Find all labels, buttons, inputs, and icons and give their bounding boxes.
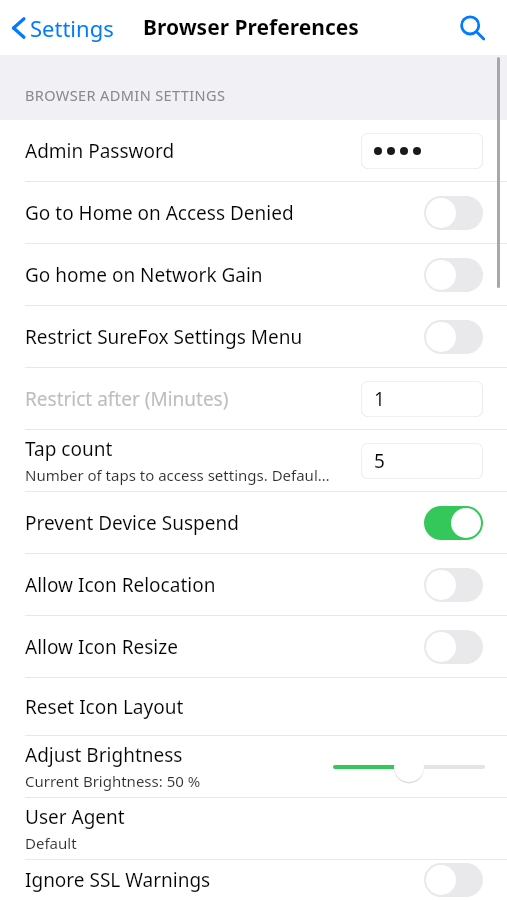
staticText: Number of taps to access settings. Defau… bbox=[25, 465, 330, 485]
button[interactable]: Admin Password bbox=[0, 120, 507, 181]
staticText: Restrict SureFox Settings Menu bbox=[25, 324, 303, 350]
staticText: Restrict after (Minutes) bbox=[25, 386, 229, 412]
button[interactable]: Adjust Brightness bbox=[0, 736, 507, 797]
staticText: Current Brightness: 50 % bbox=[25, 771, 201, 791]
staticText: Settings bbox=[30, 13, 114, 43]
button[interactable]: 5 bbox=[361, 443, 483, 479]
staticText: Go to Home on Access Denied bbox=[25, 200, 294, 226]
button[interactable]: Go home on Network Gain bbox=[0, 244, 507, 305]
button[interactable]: Reset Icon Layout bbox=[0, 678, 507, 735]
button[interactable]: Search bbox=[451, 7, 493, 49]
staticText: Go home on Network Gain bbox=[25, 262, 263, 288]
staticText: Ignore SSL Warnings bbox=[25, 867, 211, 893]
staticText: Tap count bbox=[25, 436, 113, 462]
staticText: Allow Icon Relocation bbox=[25, 572, 216, 598]
staticText: Reset Icon Layout bbox=[25, 694, 184, 720]
button[interactable]: Adjust Brightness bbox=[335, 749, 483, 785]
staticText: Allow Icon Resize bbox=[25, 634, 178, 660]
staticText: Default bbox=[25, 833, 77, 853]
button[interactable]: 1 bbox=[361, 381, 483, 417]
staticText: User Agent bbox=[25, 804, 125, 830]
button[interactable]: Tap count bbox=[0, 430, 507, 491]
button[interactable]: Allow Icon Resize bbox=[0, 616, 507, 677]
staticText: BROWSER ADMIN SETTINGS bbox=[25, 85, 226, 105]
staticText: Browser Preferences bbox=[143, 13, 359, 42]
button[interactable]: Go to Home on Access Denied bbox=[0, 182, 507, 243]
staticText: Admin Password bbox=[25, 138, 175, 164]
staticText: Adjust Brightness bbox=[25, 742, 183, 768]
button[interactable]: Settings bbox=[0, 7, 124, 49]
button[interactable]: Restrict SureFox Settings Menu bbox=[0, 306, 507, 367]
button[interactable]: Restrict after (Minutes) bbox=[0, 368, 507, 429]
staticText: 5 bbox=[374, 448, 385, 474]
button[interactable]: Prevent Device Suspend bbox=[0, 492, 507, 553]
staticText: 1 bbox=[374, 386, 385, 412]
button[interactable]: User Agent bbox=[0, 798, 507, 859]
button[interactable] bbox=[361, 133, 483, 169]
button[interactable]: Allow Icon Relocation bbox=[0, 554, 507, 615]
staticText: Prevent Device Suspend bbox=[25, 510, 239, 536]
button[interactable]: Ignore SSL Warnings bbox=[0, 860, 507, 900]
